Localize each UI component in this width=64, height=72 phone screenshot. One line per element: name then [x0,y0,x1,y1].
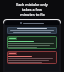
other: Menu [20,22,22,24]
button[interactable] [7,36,57,49]
button[interactable] [7,51,57,64]
staticText: takes a few [22,7,42,12]
staticText: minutes to fix [20,12,45,17]
staticText: Each mistake only [16,2,48,7]
button[interactable]: Menu [5,21,59,25]
button[interactable] [7,27,57,34]
